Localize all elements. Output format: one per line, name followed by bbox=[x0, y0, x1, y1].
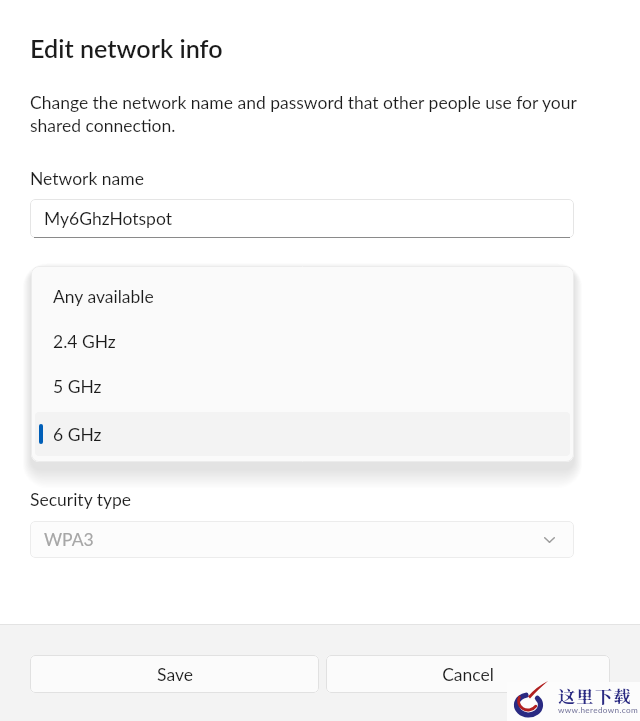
button[interactable]: Save bbox=[30, 655, 319, 693]
other: Site logo bbox=[506, 676, 550, 721]
staticText: Save bbox=[157, 664, 193, 685]
button[interactable]: 6 GHz bbox=[35, 412, 570, 456]
button[interactable]: WPA3 bbox=[30, 521, 574, 558]
staticText: Network name bbox=[30, 168, 144, 189]
button[interactable]: 5 GHz bbox=[35, 364, 570, 408]
button[interactable]: My6GhzHotspot bbox=[30, 199, 574, 238]
staticText: www.heredown.com bbox=[558, 705, 638, 715]
staticText: WPA3 bbox=[44, 529, 94, 550]
other: Expand security type bbox=[544, 537, 555, 543]
staticText: 5 GHz bbox=[53, 376, 102, 397]
staticText: Any available bbox=[53, 286, 154, 307]
staticText: Cancel bbox=[442, 664, 494, 685]
staticText: 2.4 GHz bbox=[53, 331, 116, 352]
staticText: 6 GHz bbox=[53, 424, 102, 445]
button[interactable]: Any available bbox=[35, 274, 570, 318]
staticText: Security type bbox=[30, 489, 132, 510]
staticText: 这里下载 bbox=[558, 683, 632, 707]
staticText: Change the network name and password tha… bbox=[30, 92, 577, 135]
staticText: Edit network info bbox=[30, 33, 223, 63]
button[interactable]: 2.4 GHz bbox=[35, 319, 570, 363]
staticText: My6GhzHotspot bbox=[44, 208, 172, 229]
button[interactable]: Cancel bbox=[326, 655, 610, 693]
